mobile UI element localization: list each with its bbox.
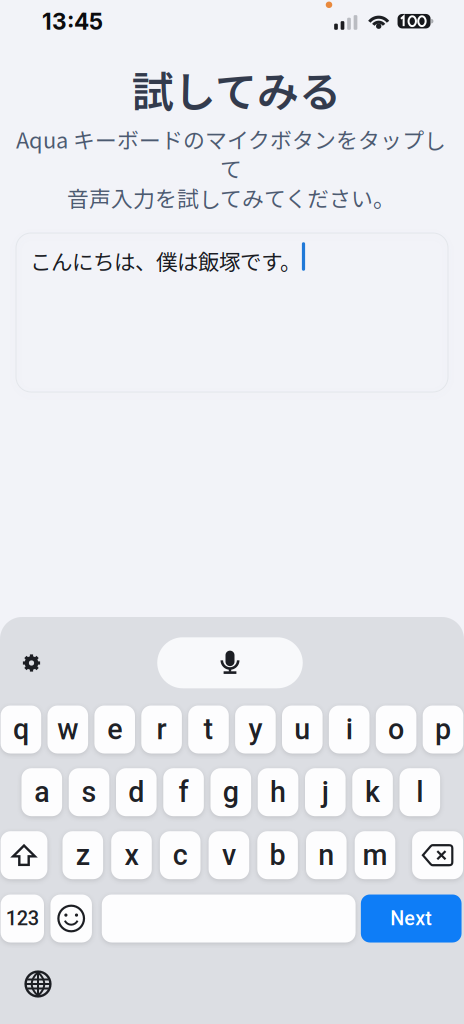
staticText: l bbox=[416, 775, 423, 809]
button[interactable]: g bbox=[210, 768, 251, 816]
staticText: g bbox=[223, 775, 239, 809]
button[interactable]: c bbox=[160, 831, 200, 879]
button[interactable]: Next bbox=[361, 894, 461, 942]
button[interactable]: Text field bbox=[16, 233, 448, 392]
button[interactable]: r bbox=[141, 705, 182, 753]
staticText: w bbox=[57, 713, 78, 746]
staticText: 試してみる bbox=[132, 59, 341, 119]
staticText: q bbox=[13, 713, 29, 746]
button[interactable]: y bbox=[235, 705, 276, 753]
staticText: i bbox=[346, 713, 353, 746]
button[interactable]: j bbox=[305, 768, 346, 816]
staticText: e bbox=[107, 713, 122, 746]
staticText: j bbox=[322, 775, 329, 809]
button[interactable]: 123 bbox=[1, 894, 44, 942]
button[interactable]: n bbox=[306, 831, 347, 879]
staticText: t bbox=[203, 713, 213, 746]
button[interactable]: i bbox=[329, 705, 369, 753]
staticText: c bbox=[173, 838, 188, 872]
button[interactable]: t bbox=[188, 705, 229, 753]
staticText: x bbox=[124, 838, 138, 872]
staticText: o bbox=[388, 713, 404, 746]
button[interactable]: h bbox=[258, 768, 298, 816]
button[interactable]: f bbox=[163, 768, 204, 816]
staticText: f bbox=[179, 775, 189, 809]
staticText: k bbox=[365, 775, 380, 809]
button[interactable]: x bbox=[111, 831, 152, 879]
button[interactable]: d bbox=[116, 768, 157, 816]
staticText: v bbox=[222, 838, 236, 872]
staticText: p bbox=[435, 713, 451, 746]
staticText: こんにちは、僕は飯塚です。 bbox=[30, 245, 301, 276]
button[interactable]: Delete bbox=[412, 831, 463, 879]
button[interactable]: u bbox=[282, 705, 323, 753]
staticText: y bbox=[248, 713, 262, 746]
button[interactable]: Space bbox=[102, 894, 356, 942]
staticText: Aqua キーボードのマイクボタンをタップし bbox=[16, 123, 446, 155]
button[interactable]: e bbox=[94, 705, 135, 753]
button[interactable]: s bbox=[69, 768, 109, 816]
button[interactable]: m bbox=[355, 831, 395, 879]
button[interactable]: v bbox=[209, 831, 249, 879]
staticText: r bbox=[157, 713, 167, 746]
staticText: m bbox=[362, 838, 387, 872]
staticText: s bbox=[81, 775, 96, 809]
button[interactable]: Keyboard settings bbox=[11, 643, 51, 683]
staticText: u bbox=[294, 713, 310, 746]
button[interactable]: b bbox=[257, 831, 298, 879]
button[interactable]: k bbox=[352, 768, 393, 816]
button[interactable]: a bbox=[21, 768, 62, 816]
staticText: て bbox=[220, 152, 242, 184]
staticText: z bbox=[76, 838, 90, 872]
button[interactable]: o bbox=[376, 705, 416, 753]
staticText: d bbox=[128, 775, 144, 809]
staticText: h bbox=[270, 775, 286, 809]
button[interactable]: q bbox=[1, 705, 41, 753]
button[interactable]: p bbox=[423, 705, 463, 753]
button[interactable]: Voice input bbox=[157, 637, 303, 688]
button[interactable]: l bbox=[399, 768, 440, 816]
button[interactable]: w bbox=[47, 705, 88, 753]
button[interactable]: Shift bbox=[1, 831, 47, 879]
staticText: a bbox=[34, 775, 49, 809]
staticText: Next bbox=[390, 907, 432, 930]
staticText: n bbox=[318, 838, 334, 872]
staticText: b bbox=[270, 838, 286, 872]
staticText: 123 bbox=[6, 907, 39, 930]
staticText: 音声入力を試してみてください。 bbox=[67, 182, 395, 213]
button[interactable]: z bbox=[62, 831, 103, 879]
staticText: 13:45 bbox=[42, 8, 103, 35]
button[interactable]: Switch keyboard bbox=[18, 964, 58, 1004]
button[interactable]: Emoji bbox=[50, 894, 92, 942]
